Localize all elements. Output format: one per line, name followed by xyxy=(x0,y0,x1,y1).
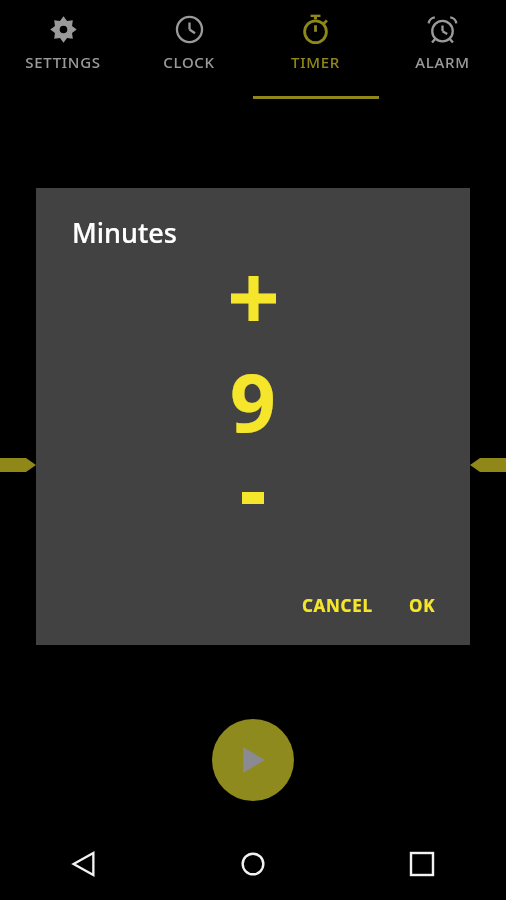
staticText: OK xyxy=(409,594,436,617)
button[interactable]: TIMER xyxy=(252,0,379,100)
button[interactable]: ALARM xyxy=(379,0,506,100)
button[interactable]: Decrease minutes xyxy=(188,472,318,524)
staticText: CLOCK xyxy=(126,52,252,72)
staticText: 9 xyxy=(230,346,276,436)
staticText: CANCEL xyxy=(302,594,373,617)
button[interactable]: Start timer xyxy=(212,719,294,801)
button[interactable]: CLOCK xyxy=(126,0,252,100)
button[interactable]: OK xyxy=(401,586,444,625)
button[interactable]: CANCEL xyxy=(294,586,381,625)
button[interactable]: Home xyxy=(168,828,337,900)
staticText: SETTINGS xyxy=(0,52,126,72)
button[interactable]: SETTINGS xyxy=(0,0,126,100)
button[interactable]: 9 xyxy=(178,346,328,436)
button[interactable]: Increase minutes xyxy=(188,264,318,332)
button[interactable]: Back xyxy=(0,828,168,900)
staticText: ALARM xyxy=(379,52,506,72)
staticText: TIMER xyxy=(252,52,379,72)
staticText: Minutes xyxy=(72,214,177,251)
button[interactable]: Recent apps xyxy=(337,828,506,900)
